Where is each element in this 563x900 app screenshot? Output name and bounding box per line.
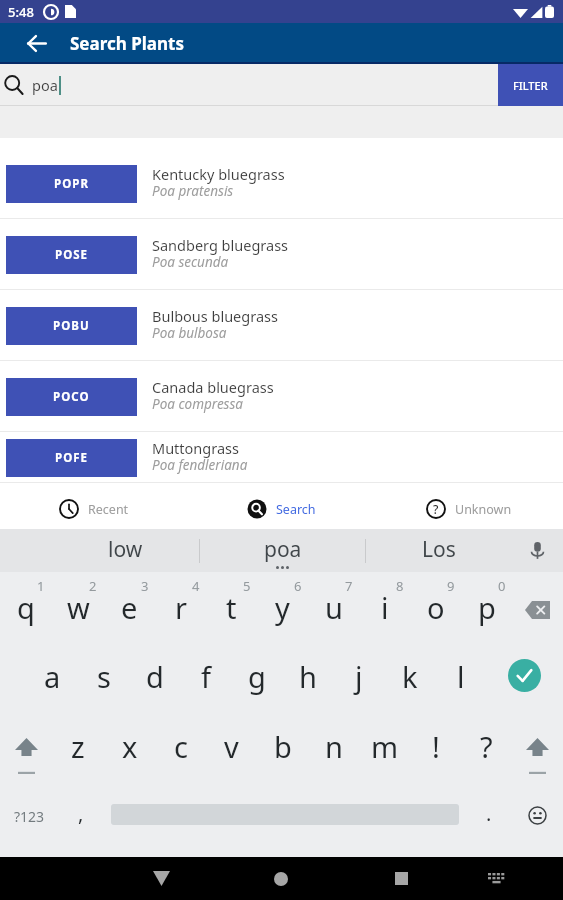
button[interactable]: 6	[257, 572, 308, 641]
button[interactable]: m	[359, 710, 410, 780]
button[interactable]: POFE	[0, 432, 563, 483]
staticText: Search	[276, 501, 316, 518]
button[interactable]: poa	[200, 529, 365, 572]
button[interactable]: a	[27, 641, 78, 710]
staticText: f	[201, 657, 211, 696]
button[interactable]: 2	[52, 572, 104, 641]
button[interactable]: Shift	[0, 710, 52, 780]
staticText: b	[274, 727, 292, 766]
staticText: u	[325, 588, 343, 627]
staticText: POCO	[53, 389, 90, 405]
staticText: 3	[141, 577, 149, 595]
button[interactable]: Enter	[486, 641, 563, 710]
staticText: j	[355, 657, 363, 696]
button[interactable]: 9	[410, 572, 461, 641]
staticText: z	[71, 727, 85, 766]
button[interactable]: Switch keyboard	[473, 857, 519, 900]
staticText: 2	[89, 577, 97, 595]
staticText: g	[248, 657, 266, 696]
staticText: Poa secunda	[152, 253, 229, 271]
staticText: o	[427, 588, 445, 627]
staticText: q	[17, 588, 35, 627]
staticText: m	[371, 727, 399, 766]
button[interactable]: f	[180, 641, 231, 710]
staticText: Kentucky bluegrass	[152, 164, 285, 184]
button[interactable]: 0	[461, 572, 512, 641]
staticText: 4	[192, 577, 200, 595]
button[interactable]: POBU	[0, 290, 563, 361]
button[interactable]: ?	[375, 483, 563, 529]
staticText: POSE	[55, 247, 89, 263]
button[interactable]: Space	[104, 780, 466, 850]
button[interactable]: 3	[104, 572, 155, 641]
button[interactable]: v	[206, 710, 257, 780]
button[interactable]: h	[282, 641, 333, 710]
staticText: 5	[243, 577, 251, 595]
staticText: ?	[480, 727, 493, 766]
button[interactable]: Shift	[512, 710, 563, 780]
button[interactable]: s	[78, 641, 129, 710]
button[interactable]: ?123	[0, 780, 58, 850]
staticText: ,	[78, 800, 84, 827]
button[interactable]: poa	[0, 64, 498, 106]
button[interactable]: Emoji	[512, 780, 563, 850]
button[interactable]: Home	[258, 857, 304, 900]
staticText: Poa compressa	[152, 395, 243, 413]
button[interactable]: Backspace	[512, 572, 563, 641]
staticText: 0	[498, 577, 506, 595]
staticText: s	[97, 657, 111, 696]
staticText: p	[478, 588, 496, 627]
staticText: c	[174, 727, 188, 766]
button[interactable]: z	[52, 710, 104, 780]
button[interactable]: b	[257, 710, 308, 780]
button[interactable]: Back	[138, 857, 184, 900]
button[interactable]: Recent	[0, 483, 187, 529]
button[interactable]: Los	[366, 529, 512, 572]
staticText: Poa pratensis	[152, 182, 234, 200]
button[interactable]: ,	[58, 780, 104, 850]
staticText: Muttongrass	[152, 438, 239, 458]
button[interactable]: 8	[359, 572, 410, 641]
button[interactable]: !	[410, 710, 461, 780]
staticText: Canada bluegrass	[152, 377, 274, 397]
staticText: h	[299, 657, 317, 696]
staticText: Los	[422, 535, 456, 564]
button[interactable]: x	[104, 710, 155, 780]
staticText: a	[44, 657, 61, 696]
button[interactable]: c	[155, 710, 206, 780]
staticText: d	[146, 657, 164, 696]
button[interactable]: ?	[461, 710, 512, 780]
button[interactable]: .	[466, 780, 512, 850]
staticText: 9	[447, 577, 455, 595]
button[interactable]: n	[308, 710, 359, 780]
button[interactable]: j	[333, 641, 384, 710]
button[interactable]: 1	[0, 572, 52, 641]
button[interactable]: Recent apps	[378, 857, 424, 900]
staticText: 6	[294, 577, 302, 595]
staticText: POBU	[53, 318, 90, 334]
button[interactable]: POSE	[0, 219, 563, 290]
button[interactable]: g	[231, 641, 282, 710]
staticText: e	[121, 588, 138, 627]
staticText: t	[226, 588, 237, 627]
button[interactable]: POCO	[0, 361, 563, 432]
staticText: POPR	[54, 176, 89, 192]
button[interactable]: Back	[0, 23, 55, 64]
button[interactable]: low	[51, 529, 199, 572]
button[interactable]: Voice input	[512, 529, 563, 572]
staticText: poa	[32, 75, 58, 95]
button[interactable]: FILTER	[498, 64, 563, 106]
staticText: !	[432, 727, 440, 766]
button[interactable]: POPR	[0, 148, 563, 219]
button[interactable]: 5	[206, 572, 257, 641]
button[interactable]: 7	[308, 572, 359, 641]
button[interactable]: Search	[187, 483, 375, 529]
button[interactable]: l	[435, 641, 486, 710]
button[interactable]: d	[129, 641, 180, 710]
button[interactable]: 4	[155, 572, 206, 641]
staticText: 8	[396, 577, 404, 595]
staticText: low	[108, 535, 143, 564]
button[interactable]: k	[384, 641, 435, 710]
staticText: poa	[264, 535, 302, 564]
staticText: y	[275, 588, 290, 627]
